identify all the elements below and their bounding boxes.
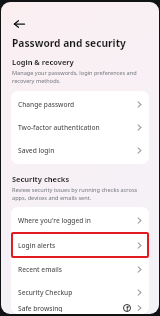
button[interactable]: Saved login <box>11 139 149 162</box>
button[interactable]: Change password <box>11 93 149 116</box>
staticText: Safe browsing <box>18 304 122 312</box>
staticText: Login & recovery <box>12 57 74 67</box>
staticText: Security Checkup <box>18 288 136 297</box>
button[interactable]: Recent emails <box>11 258 149 281</box>
staticText: Where you're logged in <box>18 216 136 225</box>
button[interactable]: Safe browsing <box>11 304 149 312</box>
button[interactable]: Where you're logged in <box>11 209 149 232</box>
staticText: Two-factor authentication <box>18 123 136 132</box>
button[interactable]: Login alerts <box>11 232 149 258</box>
staticText: Review security issues by running checks… <box>12 186 149 201</box>
staticText: f <box>126 304 129 312</box>
staticText: Security checks <box>12 174 70 184</box>
staticText: Recent emails <box>18 265 136 274</box>
staticText: Change password <box>18 100 136 109</box>
button[interactable]: Two-factor authentication <box>11 116 149 139</box>
staticText: Saved login <box>18 146 136 155</box>
staticText: Login alerts <box>18 241 136 250</box>
staticText: Manage your passwords, login preferences… <box>12 69 149 84</box>
staticText: Password and security <box>12 36 126 50</box>
button[interactable]: Security Checkup <box>11 281 149 304</box>
button[interactable]: Back <box>10 15 28 33</box>
